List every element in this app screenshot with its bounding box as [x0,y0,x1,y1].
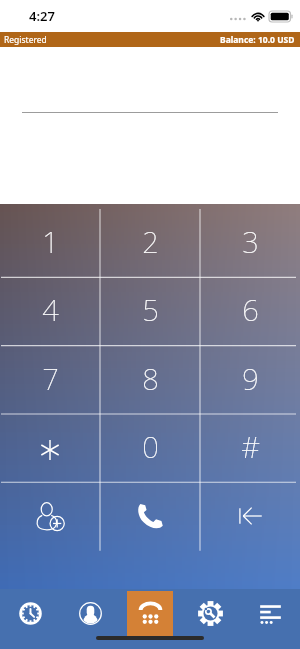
button[interactable]: More [240,590,300,636]
staticText: Balance: 10.0 USD [220,34,295,46]
staticText: # [241,427,260,466]
staticText: 8 [142,359,159,398]
button[interactable]: Contacts [60,590,120,636]
button[interactable]: Dialpad [120,590,180,636]
button[interactable]: 3 [200,209,300,277]
button[interactable]: Add contact [0,482,100,550]
button[interactable]: Backspace [200,482,300,550]
staticText: 4:27 [29,7,55,25]
button[interactable]: Settings [180,590,240,636]
staticText: 9 [242,359,259,398]
staticText: 1 [42,222,59,261]
staticText: 0 [142,427,159,466]
button[interactable] [0,414,100,482]
staticText: 2 [142,222,159,261]
button[interactable]: 0 [100,414,200,482]
button[interactable]: 9 [200,346,300,414]
button[interactable]: Call [100,482,200,550]
button[interactable]: 6 [200,277,300,345]
button[interactable]: Recents [0,590,60,636]
button[interactable]: 4 [0,277,100,345]
staticText: 5 [142,290,159,329]
button[interactable]: 5 [100,277,200,345]
button[interactable]: # [200,414,300,482]
staticText: Registered [4,34,47,46]
staticText: 4 [42,290,59,329]
staticText: 6 [242,290,259,329]
staticText: 7 [42,359,59,398]
staticText: 3 [242,222,259,261]
button[interactable]: 7 [0,346,100,414]
button[interactable]: 2 [100,209,200,277]
button[interactable]: 1 [0,209,100,277]
button[interactable]: 8 [100,346,200,414]
